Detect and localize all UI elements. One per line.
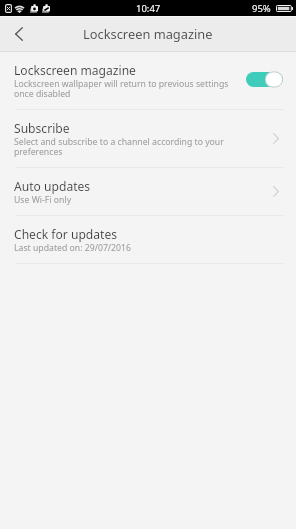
button[interactable]: Lockscreen magazine toggle <box>246 71 283 88</box>
staticText: Lockscreen magazine <box>14 62 136 78</box>
staticText: 10:47 <box>136 2 161 15</box>
staticText: Last updated on: 29/07/2016 <box>14 242 131 254</box>
staticText: Auto updates <box>14 178 91 194</box>
button[interactable]: Check for updates <box>0 216 296 263</box>
staticText: Select and subscribe to a channel accord… <box>14 136 224 157</box>
staticText: Check for updates <box>14 226 118 242</box>
staticText: Use Wi-Fi only <box>14 194 72 206</box>
staticText: Lockscreen wallpaper will return to prev… <box>14 78 229 99</box>
button[interactable]: Subscribe <box>0 110 296 167</box>
button[interactable]: Lockscreen magazine <box>0 52 296 109</box>
staticText: 95% <box>252 2 271 15</box>
button[interactable]: Back <box>0 17 37 51</box>
staticText: Lockscreen magazine <box>83 25 213 43</box>
staticText: Subscribe <box>14 120 70 136</box>
button[interactable]: Auto updates <box>0 168 296 215</box>
